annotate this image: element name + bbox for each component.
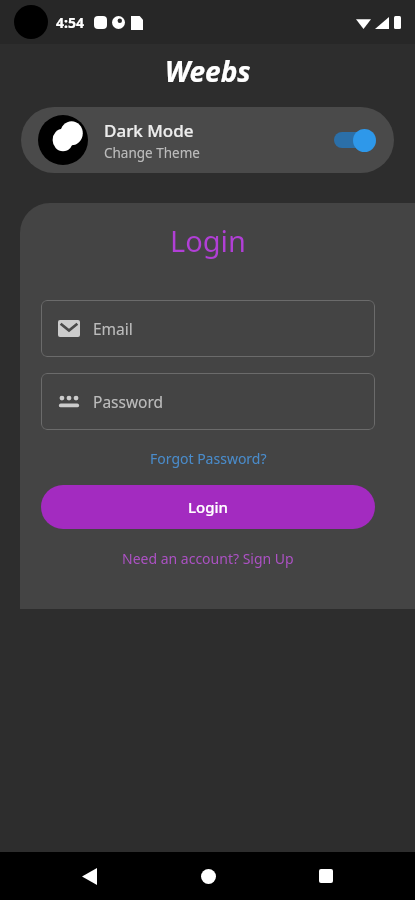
- button[interactable]: Password: [41, 373, 375, 430]
- staticText: Forgot Password?: [150, 449, 267, 468]
- staticText: Dark Mode: [104, 119, 194, 142]
- staticText: Login: [170, 221, 246, 260]
- button[interactable]: Need an account? Sign Up: [118, 545, 298, 572]
- staticText: 4:54: [56, 13, 84, 32]
- staticText: Password: [93, 391, 164, 412]
- button[interactable]: Back: [59, 852, 119, 900]
- button[interactable]: Dark Mode: [21, 107, 394, 173]
- button[interactable]: Toggle dark mode: [331, 127, 377, 153]
- staticText: Need an account? Sign Up: [122, 549, 294, 568]
- button[interactable]: Forgot Password?: [146, 445, 271, 472]
- staticText: Weebs: [165, 52, 251, 90]
- staticText: Email: [93, 318, 133, 339]
- button[interactable]: Recent apps: [296, 852, 356, 900]
- button[interactable]: Email: [41, 300, 375, 357]
- button[interactable]: Home: [178, 852, 238, 900]
- button[interactable]: Login: [41, 485, 375, 529]
- staticText: Login: [188, 497, 228, 517]
- staticText: Change Theme: [104, 144, 200, 162]
